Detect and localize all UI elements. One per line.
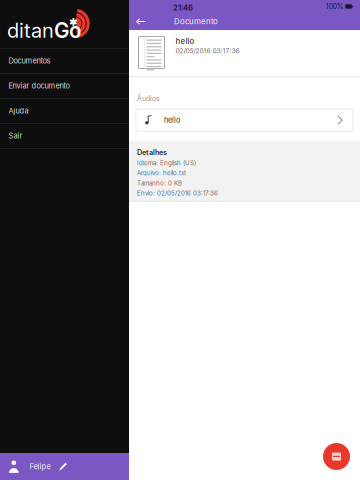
- button[interactable]: New document: [313, 433, 360, 480]
- button[interactable]: Enviar documento: [0, 74, 129, 99]
- staticText: ditan: [7, 18, 54, 43]
- button[interactable]: hello: [136, 109, 353, 131]
- button[interactable]: Sair: [0, 124, 129, 149]
- staticText: Documento: [174, 17, 218, 26]
- staticText: Idioma: English (US): [137, 159, 196, 167]
- button[interactable]: Felipe: [0, 453, 129, 480]
- staticText: Go: [54, 18, 82, 43]
- staticText: Tamanho: 0 KB: [137, 179, 182, 187]
- staticText: hello: [164, 116, 180, 125]
- staticText: Detalhes: [137, 148, 167, 157]
- staticText: Documentos: [8, 56, 50, 65]
- staticText: 21:46: [173, 3, 193, 12]
- staticText: Felipe: [30, 462, 51, 471]
- button[interactable]: Ajuda: [0, 99, 129, 124]
- staticText: hello: [175, 36, 194, 46]
- staticText: Áudios: [137, 94, 160, 103]
- staticText: 02/05/2016 03:17:36: [175, 47, 239, 55]
- staticText: Sair: [8, 131, 22, 140]
- staticText: Arquivo: hello.txt: [137, 169, 186, 177]
- button[interactable]: Back: [129, 13, 152, 30]
- staticText: Enviar documento: [8, 81, 69, 90]
- button[interactable]: Documentos: [0, 49, 129, 74]
- staticText: 100%: [326, 2, 344, 11]
- staticText: Envio: 02/05/2016 03:17:36: [137, 189, 218, 197]
- staticText: Ajuda: [8, 106, 28, 115]
